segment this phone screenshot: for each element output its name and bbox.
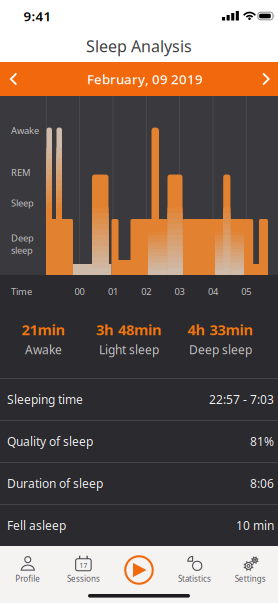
staticText: Sleep Analysis xyxy=(86,35,192,57)
staticText: Quality of sleep xyxy=(7,433,93,449)
staticText: 21min xyxy=(21,320,65,339)
button[interactable] xyxy=(111,546,167,603)
staticText: 01 xyxy=(108,285,118,298)
staticText: Sleep xyxy=(11,197,34,209)
staticText: 05 xyxy=(241,285,251,298)
staticText: Sessions xyxy=(67,573,100,584)
staticText: 02 xyxy=(141,285,151,298)
staticText: REM xyxy=(11,166,30,179)
staticText: Time xyxy=(11,285,32,298)
staticText: Awake xyxy=(11,124,39,137)
button[interactable]: Statistics xyxy=(167,546,222,603)
staticText: 04 xyxy=(208,285,218,298)
staticText: Awake xyxy=(25,341,62,357)
staticText: 03 xyxy=(175,285,185,298)
staticText: Statistics xyxy=(178,573,211,584)
staticText: Deep sleep xyxy=(189,341,252,357)
staticText: Fell asleep xyxy=(7,517,66,533)
staticText: Light sleep xyxy=(99,341,159,357)
staticText: 8:06 xyxy=(250,475,274,491)
button[interactable]: 17 xyxy=(56,546,111,603)
button[interactable] xyxy=(254,69,276,89)
staticText: 9:41 xyxy=(23,7,51,25)
staticText: 00 xyxy=(75,285,85,298)
button[interactable]: Profile xyxy=(0,546,56,603)
staticText: Sleeping time xyxy=(7,391,83,407)
staticText: Profile xyxy=(15,573,40,584)
staticText: 22:57 - 7:03 xyxy=(209,391,274,407)
button[interactable] xyxy=(3,69,25,89)
staticText: February, 09 2019 xyxy=(87,70,203,88)
staticText: Duration of sleep xyxy=(7,475,103,491)
staticText: 3h 48min xyxy=(96,320,162,339)
staticText: 17 xyxy=(79,561,87,570)
staticText: 81% xyxy=(250,433,274,449)
button[interactable]: Settings xyxy=(222,546,278,603)
staticText: Deep sleep xyxy=(11,232,34,256)
staticText: 4h 33min xyxy=(187,320,253,339)
staticText: 10 min xyxy=(236,517,274,533)
staticText: Settings xyxy=(235,573,266,584)
